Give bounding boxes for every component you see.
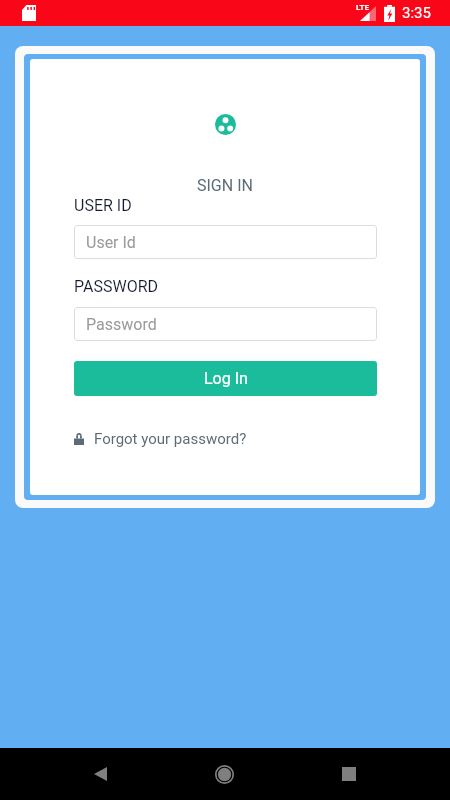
button[interactable]: Back (70, 748, 131, 800)
staticText: Log In (204, 369, 248, 388)
button[interactable]: Recent apps (318, 748, 379, 800)
button[interactable]: Password (74, 307, 377, 341)
staticText: USER ID (74, 196, 132, 215)
staticText: PASSWORD (74, 277, 159, 296)
button[interactable]: User Id (74, 225, 377, 259)
staticText: LTE (356, 3, 369, 12)
staticText: Password (86, 315, 157, 334)
staticText: Forgot your password? (94, 430, 247, 448)
staticText: 3:35 (402, 4, 431, 22)
staticText: SIGN IN (197, 176, 253, 195)
button[interactable]: Forgot your password? (74, 430, 247, 448)
button[interactable]: Log In (74, 361, 377, 396)
button[interactable]: Home (194, 748, 255, 800)
staticText: User Id (86, 233, 136, 252)
